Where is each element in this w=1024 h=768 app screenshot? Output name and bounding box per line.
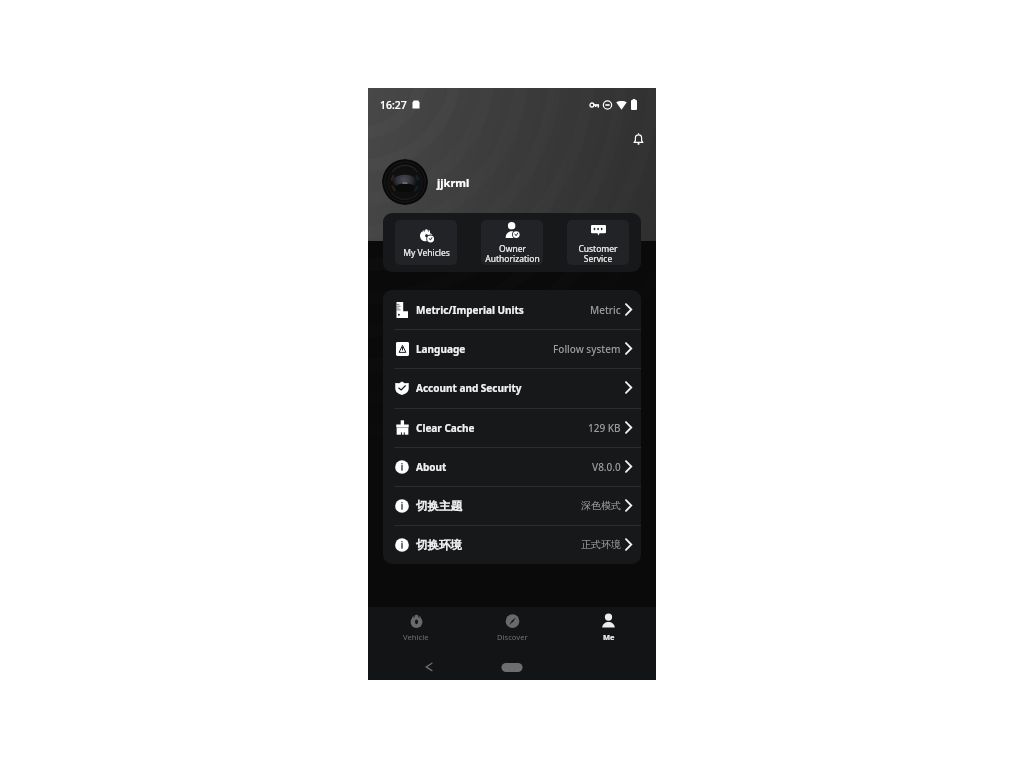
button[interactable]: Customer Service — [567, 220, 629, 265]
staticText: Discover — [497, 632, 528, 642]
staticText: Me — [603, 632, 615, 642]
button[interactable]: Profile photo — [382, 159, 428, 205]
staticText: Follow system — [553, 342, 621, 356]
button[interactable]: 切换主题 — [383, 486, 641, 525]
button[interactable]: Account and Security — [383, 368, 641, 407]
staticText: Metric/Imperial Units — [416, 303, 524, 317]
button[interactable]: About — [383, 447, 641, 486]
button[interactable]: 切换环境 — [383, 525, 641, 564]
button[interactable]: Owner Authorization — [481, 220, 543, 265]
staticText: 切换主题 — [416, 499, 462, 513]
staticText: Language — [416, 342, 466, 356]
button[interactable]: Me — [560, 607, 656, 656]
staticText: Owner Authorization — [485, 243, 540, 264]
button[interactable]: Discover — [464, 607, 560, 656]
staticText: 正式环境 — [581, 538, 621, 551]
staticText: Clear Cache — [416, 421, 475, 435]
staticText: V8.0.0 — [592, 460, 621, 474]
button[interactable]: Vehicle — [368, 607, 464, 656]
button[interactable]: Clear Cache — [383, 408, 641, 447]
button[interactable]: My Vehicles — [395, 220, 457, 265]
staticText: Customer Service — [578, 243, 618, 264]
staticText: Account and Security — [416, 381, 522, 395]
staticText: Metric — [590, 303, 621, 317]
staticText: 切换环境 — [416, 538, 462, 552]
staticText: My Vehicles — [403, 247, 450, 259]
staticText: jjkrml — [437, 175, 470, 190]
button[interactable]: Language — [383, 329, 641, 368]
button[interactable]: Notifications — [627, 128, 649, 150]
button[interactable]: Metric/Imperial Units — [383, 290, 641, 329]
staticText: 深色模式 — [581, 499, 621, 512]
staticText: 129 KB — [588, 421, 621, 435]
staticText: Vehicle — [403, 632, 429, 642]
staticText: About — [416, 460, 447, 474]
staticText: 16:27 — [380, 98, 407, 112]
